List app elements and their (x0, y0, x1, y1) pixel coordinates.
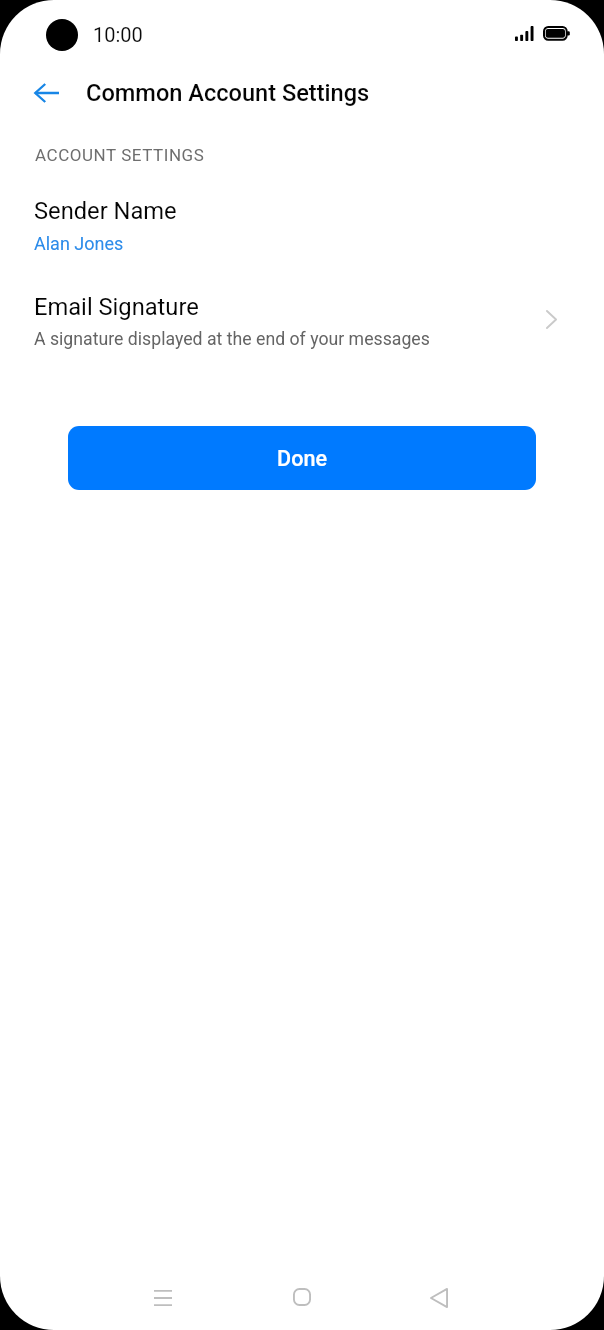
staticText: Common Account Settings (86, 79, 370, 107)
staticText: Alan Jones (34, 233, 124, 254)
button[interactable]: Email Signature (0, 283, 604, 359)
staticText: A signature displayed at the end of your… (34, 329, 430, 350)
staticText: Email Signature (34, 293, 199, 321)
button[interactable]: Back (409, 1275, 469, 1321)
staticText: 10:00 (93, 23, 143, 46)
button[interactable]: Recent apps (133, 1275, 193, 1321)
button[interactable]: Home (272, 1274, 332, 1320)
button[interactable]: Sender Name (0, 191, 604, 269)
staticText: Done (277, 446, 327, 471)
button[interactable]: Back (22, 69, 70, 117)
button[interactable]: Done (68, 426, 536, 490)
staticText: ACCOUNT SETTINGS (35, 145, 205, 165)
staticText: Sender Name (34, 197, 177, 225)
